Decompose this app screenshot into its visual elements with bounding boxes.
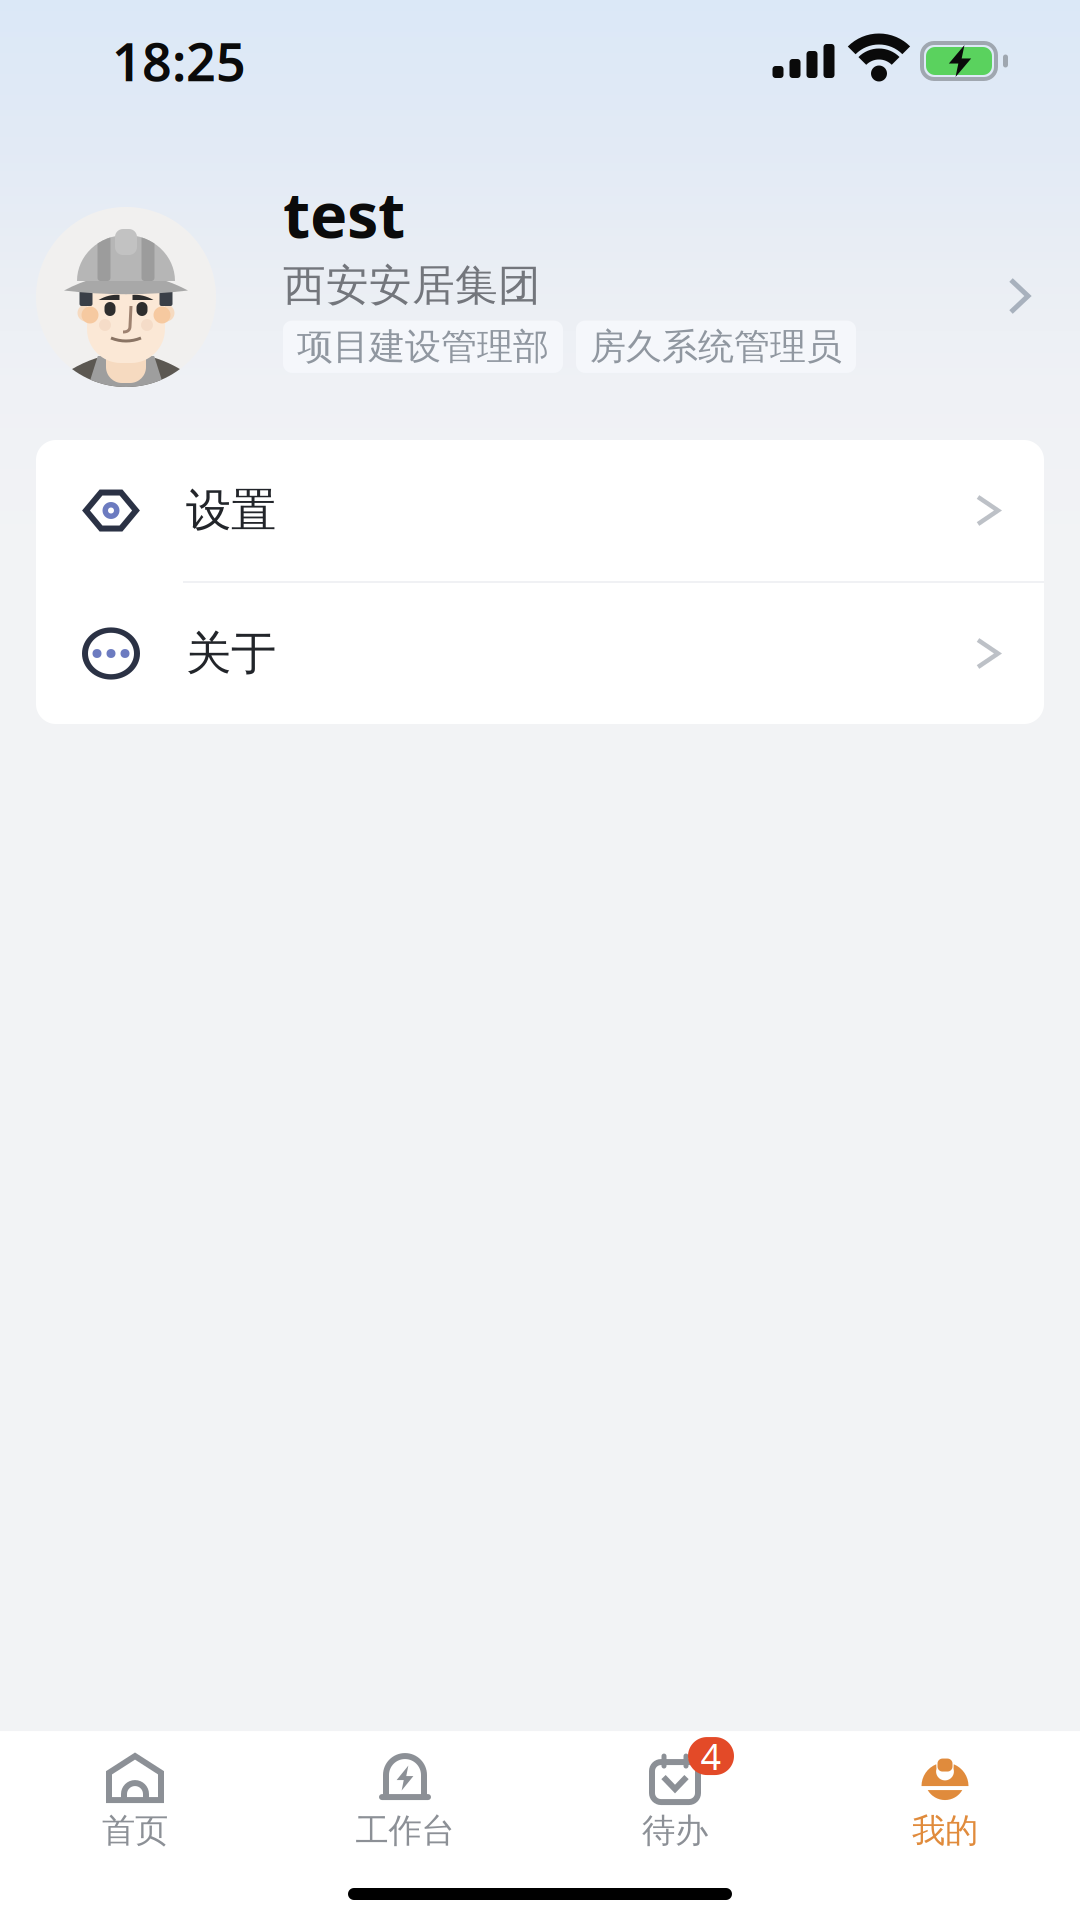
staticText: 西安安居集团 (283, 259, 541, 312)
button[interactable]: 关于 (36, 583, 1044, 724)
staticText: 房久系统管理员 (590, 325, 842, 369)
staticText: 我的 (912, 1810, 978, 1851)
staticText: 首页 (102, 1810, 168, 1851)
staticText: 待办 (642, 1810, 708, 1851)
button[interactable]: 首页 (0, 1731, 270, 1860)
button[interactable]: 设置 (36, 440, 1044, 581)
staticText: 4 (700, 1732, 721, 1780)
staticText: 设置 (186, 483, 276, 538)
staticText: 项目建设管理部 (297, 325, 549, 369)
staticText: test (283, 172, 405, 255)
staticText: 18:25 (112, 26, 246, 96)
button[interactable]: 工作台 (270, 1731, 540, 1860)
staticText: 工作台 (355, 1810, 454, 1851)
staticText: 关于 (186, 626, 276, 681)
button[interactable]: 4 (540, 1731, 810, 1860)
button[interactable]: 我的 (810, 1731, 1080, 1860)
button[interactable]: test (0, 122, 1080, 388)
